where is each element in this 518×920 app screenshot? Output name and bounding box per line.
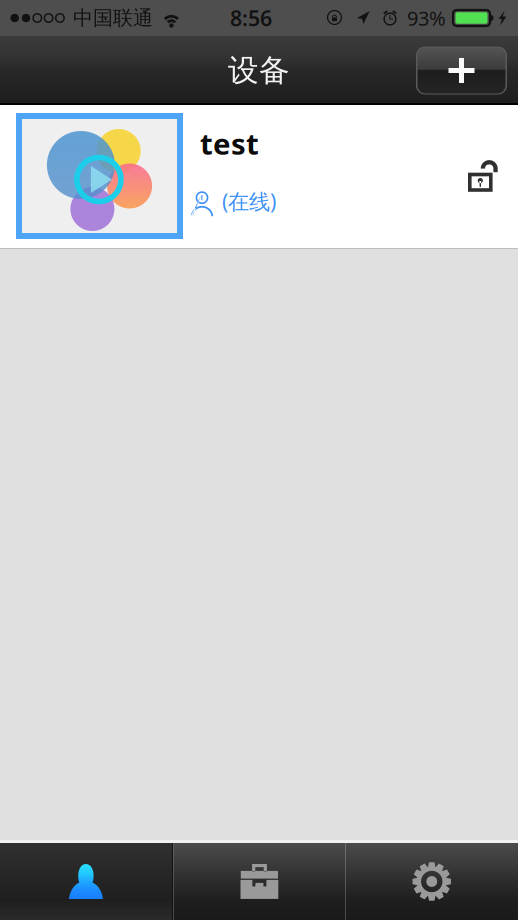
- button[interactable]: Toolbox: [173, 843, 345, 920]
- staticText: 设备: [228, 52, 290, 89]
- staticText: 8:56: [230, 4, 272, 32]
- button[interactable]: Add device: [416, 46, 507, 94]
- staticText: 93%: [407, 5, 446, 31]
- staticText: (在线): [222, 187, 276, 215]
- button[interactable]: Settings: [345, 843, 518, 920]
- button[interactable]: test: [0, 105, 518, 248]
- staticText: 中国联通: [73, 6, 153, 30]
- staticText: test: [200, 124, 259, 163]
- button[interactable]: Contacts: [0, 843, 172, 920]
